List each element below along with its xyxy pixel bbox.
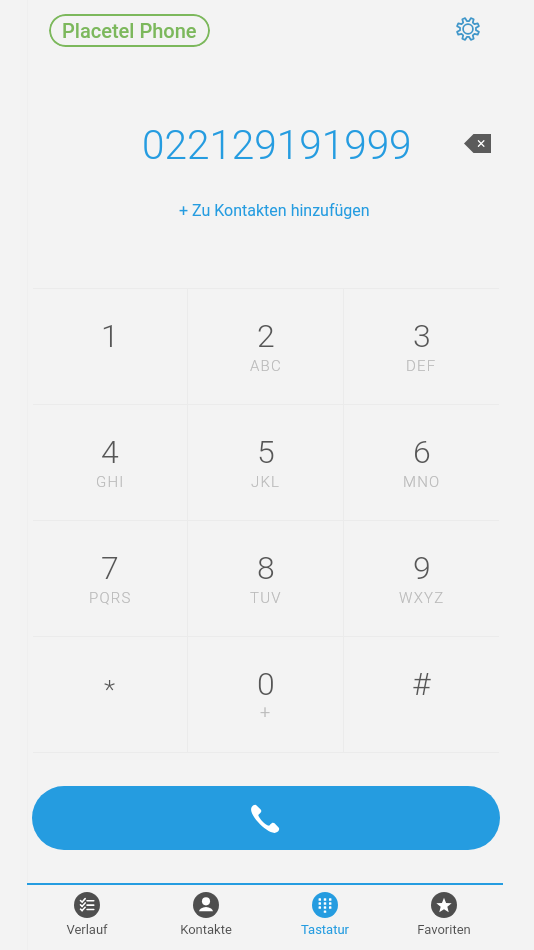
button[interactable]: Favoriten [384,886,503,950]
staticText: Placetel Phone [62,19,197,42]
button[interactable]: 4 [33,405,187,520]
staticText: 8 [257,549,275,587]
staticText: 2 [257,317,275,355]
staticText: PQRS [89,589,132,607]
button[interactable]: * [33,637,187,752]
staticText: # [412,665,431,703]
staticText: 0 [257,665,275,703]
button[interactable]: Kontakte [146,886,265,950]
button[interactable]: 5 [188,405,343,520]
button[interactable]: Call [32,786,500,850]
staticText: Kontakte [180,922,232,937]
button[interactable]: + Zu Kontakten hinzufügen [167,193,382,228]
staticText: 9 [413,549,431,587]
staticText: WXYZ [399,589,445,607]
button[interactable]: # [344,637,499,752]
staticText: MNO [403,473,441,491]
button[interactable]: 6 [344,405,499,520]
button[interactable]: 0 [188,637,343,752]
staticText: Tastatur [301,922,349,937]
button[interactable]: Settings [446,7,489,50]
staticText: 022129191999 [142,121,412,168]
button[interactable]: 1 [33,289,187,404]
button[interactable]: 9 [344,521,499,636]
staticText: 4 [101,433,119,471]
staticText: DEF [406,357,437,375]
button[interactable]: 7 [33,521,187,636]
staticText: 6 [413,433,431,471]
button[interactable]: Backspace [455,124,499,162]
button[interactable]: Placetel Phone [49,14,210,47]
staticText: JKL [251,473,281,491]
staticText: 7 [101,549,119,587]
staticText: 1 [101,317,119,355]
staticText: Verlauf [66,922,108,937]
staticText: 3 [413,317,431,355]
staticText: 5 [257,433,275,471]
button[interactable]: 2 [188,289,343,404]
staticText: GHI [96,473,125,491]
staticText: * [104,675,116,705]
staticText: ABC [250,357,282,375]
staticText: + Zu Kontakten hinzufügen [179,201,370,220]
staticText: Favoriten [417,922,471,937]
button[interactable]: Tastatur [265,886,384,950]
button[interactable]: 8 [188,521,343,636]
staticText: TUV [250,589,282,607]
button[interactable]: 3 [344,289,499,404]
button[interactable]: Verlauf [28,886,146,950]
staticText: + [260,701,271,722]
